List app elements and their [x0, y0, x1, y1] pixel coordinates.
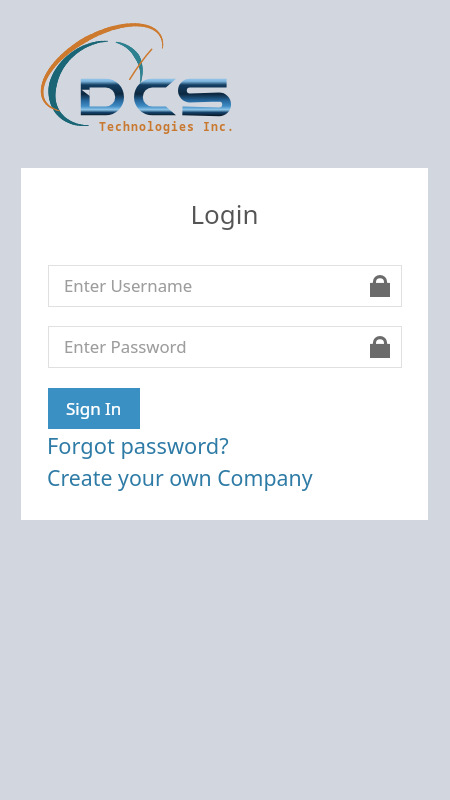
button[interactable]: Forgot password? — [47, 431, 229, 461]
staticText: Sign In — [66, 397, 122, 420]
other: Secure field — [370, 275, 390, 297]
other: Secure field — [370, 336, 390, 358]
staticText: Login — [21, 196, 428, 231]
button[interactable]: Enter Password — [48, 326, 402, 368]
button[interactable]: Enter Username — [48, 265, 402, 307]
staticText: Technologies Inc. — [99, 119, 235, 135]
staticText: Create your own Company — [47, 463, 313, 492]
button[interactable]: Create your own Company — [47, 463, 313, 492]
staticText: Enter Username — [64, 274, 193, 297]
staticText: Forgot password? — [47, 431, 229, 461]
staticText: Enter Password — [64, 335, 187, 358]
button[interactable]: Sign In — [48, 388, 140, 429]
